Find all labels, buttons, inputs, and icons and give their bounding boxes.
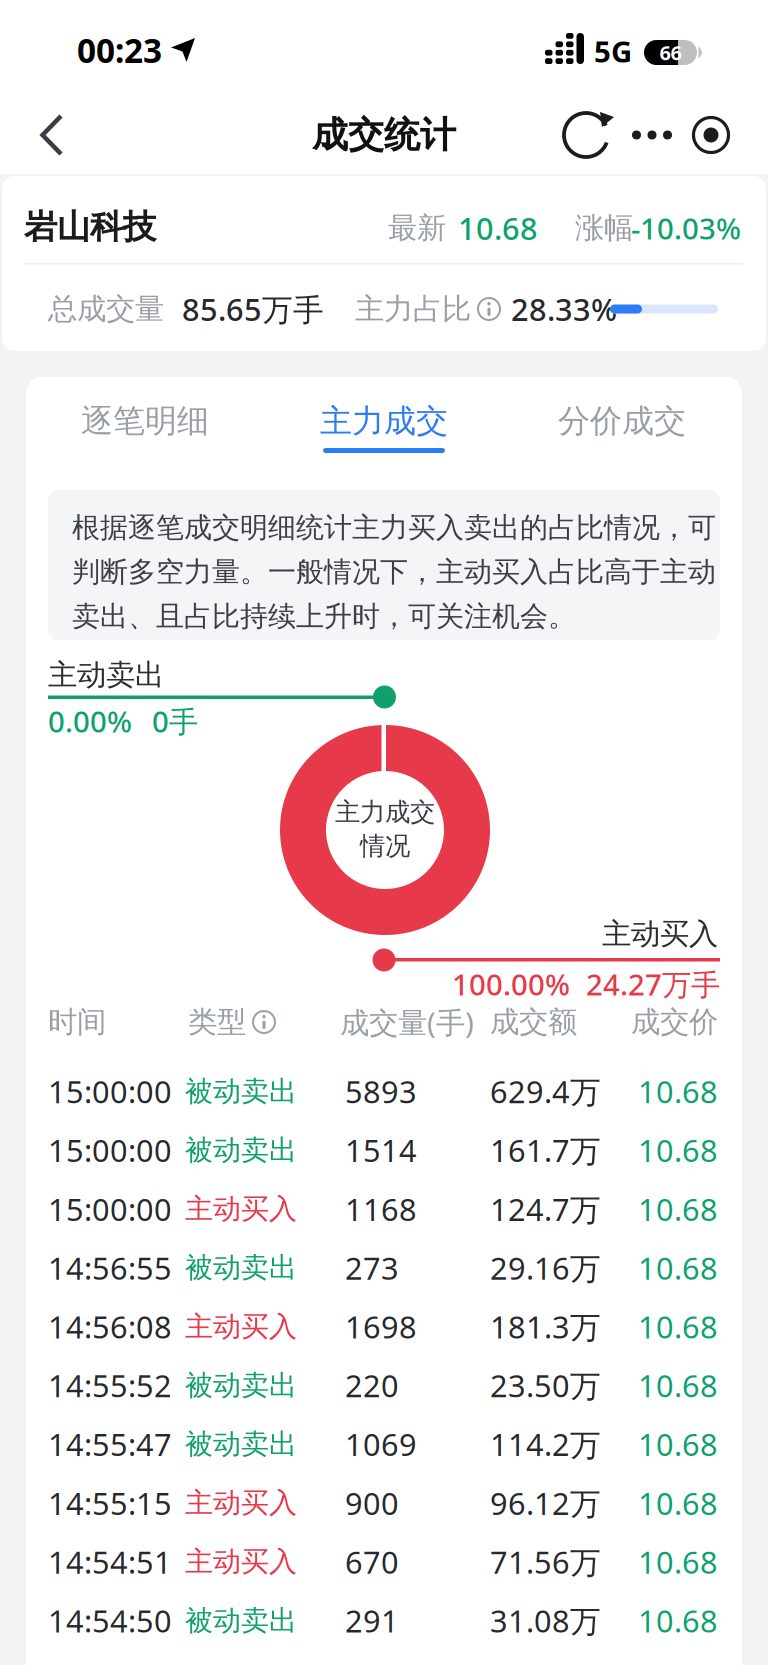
staticText: 情况 [360,830,410,861]
staticText: 629.4万 [490,1071,601,1112]
staticText: 时间 [48,1004,106,1040]
button[interactable]: 逐笔明细 [26,377,264,465]
staticText: 主动卖出 [48,657,164,693]
staticText: 14:54:51 [48,1541,172,1582]
button[interactable]: 类型说明 [247,1005,281,1039]
staticText: 岩山科技 [24,206,156,247]
staticText: 85.65万手 [182,289,324,329]
staticText: 被动卖出 [185,1133,297,1167]
staticText: 被动卖出 [185,1427,297,1461]
staticText: 23.50万 [490,1365,601,1406]
staticText: 670 [345,1541,399,1582]
staticText: 24.27万手 [586,964,720,1003]
staticText: 291 [345,1600,399,1641]
staticText: 被动卖出 [185,1074,297,1109]
staticText: 900 [345,1483,399,1523]
button[interactable]: 主力占比说明 [472,292,506,326]
staticText: 114.2万 [490,1424,601,1464]
staticText: 29.16万 [490,1247,601,1288]
staticText: 1698 [345,1306,417,1347]
staticText: 124.7万 [490,1189,601,1229]
staticText: 主力成交 [320,401,448,441]
staticText: 15:00:00 [48,1071,172,1112]
staticText: 66 [659,39,681,66]
button[interactable]: Back [24,100,80,170]
staticText: 类型 [188,1004,246,1040]
staticText: 161.7万 [490,1130,601,1170]
staticText: 10.68 [638,1365,718,1406]
staticText: 成交额 [490,1004,577,1040]
staticText: 10.68 [458,208,538,248]
staticText: 0手 [152,701,198,740]
staticText: 14:54:50 [48,1600,172,1641]
staticText: 31.08万 [490,1600,601,1641]
staticText: 5893 [345,1071,417,1112]
staticText: 1069 [345,1424,417,1464]
staticText: 10.68 [638,1189,718,1229]
staticText: 1514 [345,1130,417,1170]
button[interactable]: More [627,100,677,170]
staticText: 分价成交 [558,401,686,441]
staticText: 10.68 [638,1600,718,1641]
staticText: 14:55:47 [48,1424,172,1464]
staticText: -10.03% [631,208,741,247]
staticText: 被动卖出 [185,1368,297,1403]
staticText: 220 [345,1365,399,1406]
staticText: 96.12万 [490,1483,601,1523]
button[interactable]: 主力成交 [265,377,503,465]
button[interactable]: Options [686,100,736,170]
staticText: 被动卖出 [185,1251,297,1285]
staticText: 主动买入 [185,1309,297,1344]
staticText: 被动卖出 [185,1603,297,1638]
staticText: 主动买入 [602,916,718,952]
staticText: 71.56万 [490,1541,601,1582]
staticText: 5G [594,31,632,70]
staticText: 0.00% [48,701,132,740]
staticText: 1168 [345,1189,417,1229]
staticText: 最新 [388,210,446,246]
staticText: 181.3万 [490,1306,601,1347]
button[interactable]: Refresh [556,100,616,170]
staticText: 主力占比 [355,291,471,327]
staticText: 273 [345,1247,399,1288]
staticText: 根据逐笔成交明细统计主力买入卖出的占比情况，可 判断多空力量。一般情况下，主动买… [72,510,716,634]
staticText: 14:56:55 [48,1247,172,1288]
staticText: 14:56:08 [48,1306,172,1347]
staticText: 10.68 [638,1541,718,1582]
staticText: 成交量(手) [340,1002,474,1041]
staticText: 主力成交 [335,796,435,827]
staticText: 28.33% [511,289,617,329]
staticText: 10.68 [638,1483,718,1523]
staticText: 15:00:00 [48,1130,172,1170]
staticText: 14:55:15 [48,1483,172,1523]
staticText: 10.68 [638,1071,718,1112]
staticText: 10.68 [638,1306,718,1347]
staticText: 14:55:52 [48,1365,172,1406]
staticText: 10.68 [638,1130,718,1170]
staticText: 成交价 [631,1004,718,1040]
staticText: 逐笔明细 [81,401,209,441]
staticText: 10.68 [638,1247,718,1288]
staticText: 涨幅 [575,210,633,246]
staticText: 00:23 [77,28,162,72]
staticText: 100.00% [452,964,570,1003]
staticText: 主动买入 [185,1545,297,1579]
staticText: 15:00:00 [48,1189,172,1229]
staticText: 10.68 [638,1424,718,1464]
button[interactable]: 分价成交 [503,377,741,465]
staticText: 总成交量 [48,291,164,327]
staticText: 成交统计 [312,113,456,157]
staticText: 主动买入 [185,1486,297,1520]
staticText: 主动买入 [185,1192,297,1226]
